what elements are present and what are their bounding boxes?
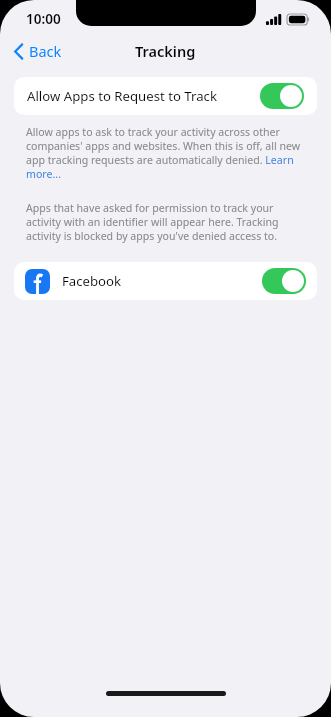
button[interactable]: Back [10,37,66,65]
button[interactable]: Toggle on [260,83,304,109]
staticText: Facebook [62,272,122,290]
staticText: Apps that have asked for permission to t… [26,201,305,243]
staticText: Back [29,41,62,61]
staticText: 10:00 [26,10,61,28]
staticText: Tracking [135,41,196,61]
button[interactable]: Facebook [14,262,317,300]
button[interactable]: Allow Apps to Request to Track [14,77,317,115]
staticText: Allow Apps to Request to Track [27,87,217,105]
staticText: Allow apps to ask to track your activity… [26,125,305,181]
button[interactable]: Toggle on [262,268,306,294]
